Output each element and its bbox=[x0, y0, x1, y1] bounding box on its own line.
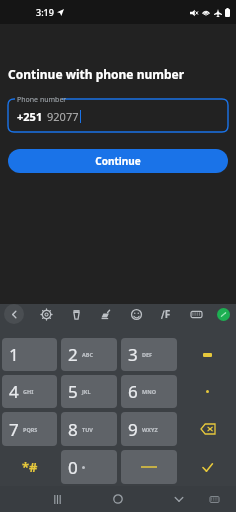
staticText: 9 bbox=[128, 418, 138, 441]
staticText: 3:19 bbox=[36, 6, 54, 18]
button[interactable]: Stickers bbox=[97, 305, 115, 323]
button[interactable]: 4 bbox=[2, 375, 57, 408]
button[interactable]: Enter bbox=[179, 448, 236, 486]
button[interactable]: Continue bbox=[8, 149, 228, 173]
staticText: WXYZ bbox=[142, 426, 158, 433]
button[interactable]: Settings bbox=[37, 305, 55, 323]
staticText: +251 bbox=[17, 109, 43, 124]
button[interactable]: Backspace bbox=[179, 410, 236, 448]
staticText: MNO bbox=[142, 388, 157, 395]
button[interactable]: 7 bbox=[2, 412, 57, 446]
button[interactable]: Dot bbox=[179, 373, 236, 410]
staticText: TUV bbox=[82, 426, 93, 433]
button[interactable]: 1 bbox=[2, 338, 57, 371]
button[interactable]: Minus bbox=[179, 336, 236, 373]
button[interactable]: Change keyboard bbox=[204, 489, 224, 509]
button[interactable]: Keyboard bbox=[187, 305, 205, 323]
button[interactable]: Hide keyboard bbox=[168, 488, 190, 510]
staticText: 6 bbox=[128, 380, 138, 403]
button[interactable]: 6 bbox=[121, 375, 177, 408]
staticText: Continue with phone number bbox=[8, 66, 185, 82]
staticText: ∕F bbox=[161, 307, 171, 321]
staticText: 0 bbox=[68, 456, 78, 479]
button[interactable]: Home bbox=[107, 488, 129, 510]
staticText: Continue bbox=[95, 154, 141, 168]
staticText: 3 bbox=[128, 343, 138, 366]
button[interactable]: Phone number bbox=[8, 94, 228, 132]
button[interactable]: Dash bbox=[121, 450, 177, 484]
button[interactable]: Translate bbox=[217, 308, 230, 321]
button[interactable]: *# bbox=[0, 448, 59, 486]
staticText: JKL bbox=[82, 388, 91, 395]
button[interactable]: 5 bbox=[61, 375, 117, 408]
button[interactable]: ∕F bbox=[157, 305, 175, 323]
staticText: 1 bbox=[9, 343, 19, 366]
staticText: 7 bbox=[9, 418, 19, 441]
staticText: 2 bbox=[68, 343, 78, 366]
staticText: 4 bbox=[9, 380, 19, 403]
button[interactable]: Emoji bbox=[127, 305, 145, 323]
staticText: Phone number bbox=[17, 95, 67, 105]
button[interactable]: 0 bbox=[61, 450, 117, 484]
button[interactable]: Clipboard bbox=[67, 305, 85, 323]
button[interactable]: Back bbox=[4, 304, 24, 324]
button[interactable]: 8 bbox=[61, 412, 117, 446]
staticText: 5 bbox=[68, 380, 78, 403]
button[interactable]: Recents bbox=[46, 488, 68, 510]
staticText: 8 bbox=[68, 418, 78, 441]
button[interactable]: 2 bbox=[61, 338, 117, 371]
staticText: ABC bbox=[82, 351, 93, 358]
staticText: *# bbox=[22, 458, 38, 476]
staticText: 92077 bbox=[47, 109, 79, 124]
staticText: GHI bbox=[23, 388, 34, 395]
staticText: DEF bbox=[142, 351, 153, 358]
staticText: PQRS bbox=[23, 426, 38, 433]
button[interactable]: 3 bbox=[121, 338, 177, 371]
button[interactable]: 9 bbox=[121, 412, 177, 446]
